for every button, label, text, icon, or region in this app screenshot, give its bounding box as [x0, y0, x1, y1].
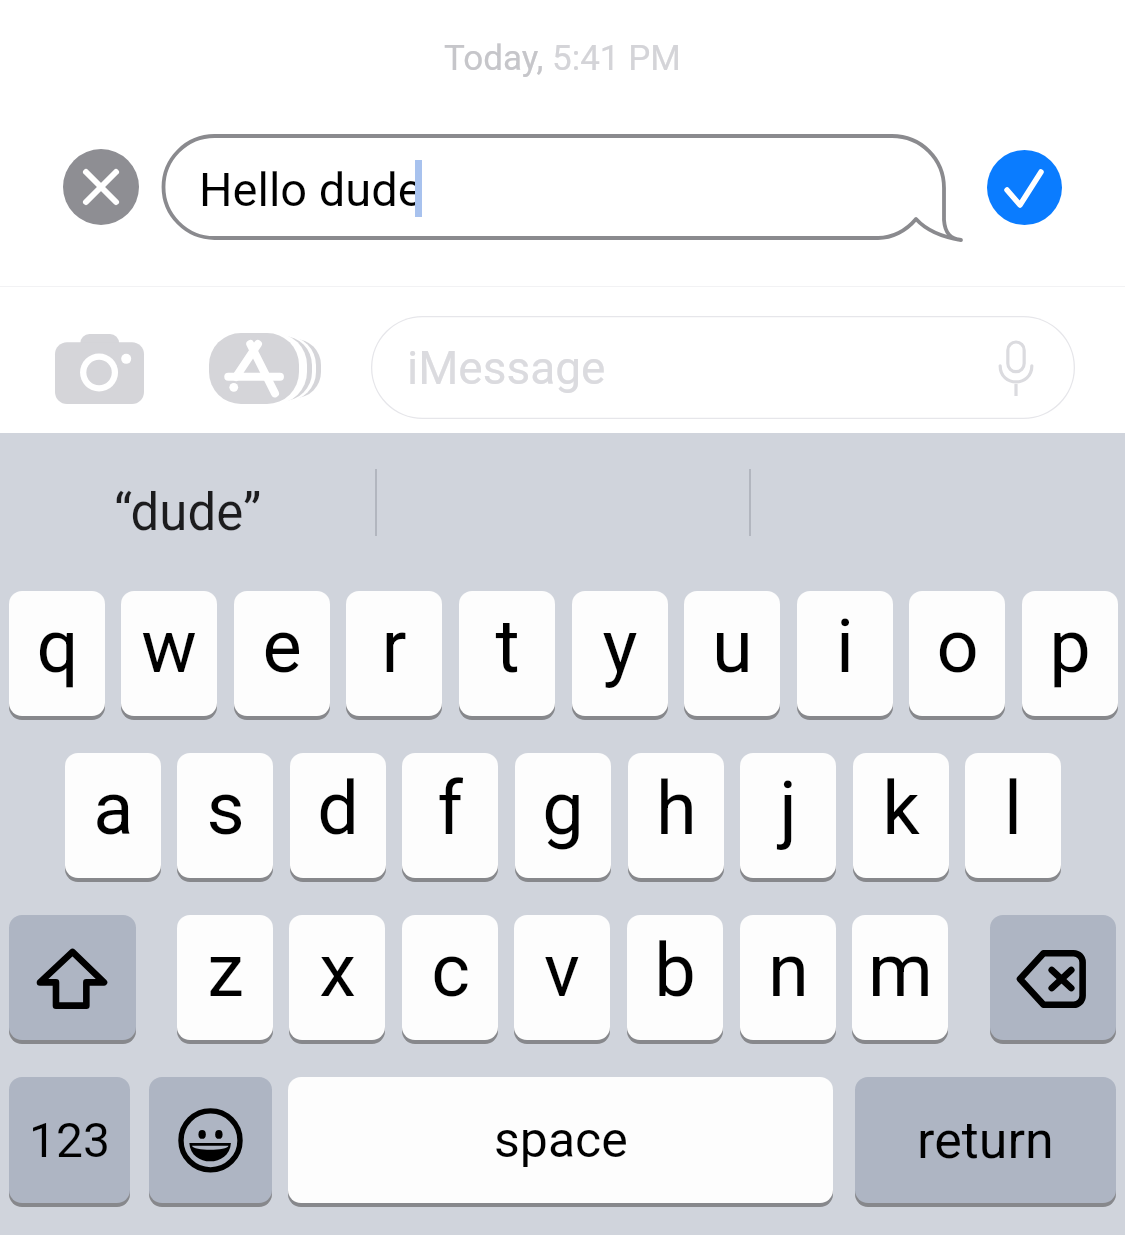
staticText: e: [262, 603, 302, 690]
button[interactable]: a: [65, 753, 161, 878]
button[interactable]: f: [402, 753, 498, 878]
button[interactable]: s: [177, 753, 273, 878]
button[interactable]: [161, 133, 966, 245]
button[interactable]: “dude”: [0, 465, 375, 560]
button[interactable]: g: [515, 753, 611, 878]
staticText: w: [141, 603, 197, 690]
staticText: l: [1004, 765, 1022, 852]
staticText: r: [381, 603, 407, 690]
staticText: v: [544, 927, 580, 1014]
button[interactable]: t: [459, 591, 555, 716]
button[interactable]: Emoji: [149, 1077, 272, 1203]
button[interactable]: Cancel: [63, 149, 139, 225]
staticText: n: [768, 927, 809, 1014]
staticText: c: [431, 927, 470, 1014]
button[interactable]: r: [346, 591, 442, 716]
staticText: Today,: [444, 38, 552, 79]
staticText: z: [207, 927, 244, 1014]
staticText: b: [654, 927, 696, 1014]
button[interactable]: n: [740, 915, 836, 1040]
button[interactable]: u: [684, 591, 780, 716]
staticText: q: [36, 603, 79, 690]
button[interactable]: m: [852, 915, 948, 1040]
staticText: i: [836, 603, 854, 690]
staticText: g: [542, 765, 584, 852]
button[interactable]: j: [740, 753, 836, 878]
button[interactable]: iMessage: [371, 316, 1075, 419]
staticText: Hello dude: [199, 162, 423, 217]
staticText: iMessage: [407, 341, 606, 395]
button[interactable]: z: [177, 915, 273, 1040]
staticText: return: [917, 1110, 1054, 1171]
button[interactable]: x: [289, 915, 385, 1040]
staticText: a: [93, 765, 134, 852]
staticText: j: [779, 765, 797, 852]
staticText: o: [936, 603, 979, 690]
button[interactable]: e: [234, 591, 330, 716]
staticText: 5:41 PM: [552, 38, 681, 79]
button[interactable]: h: [628, 753, 724, 878]
button[interactable]: Shift: [9, 915, 136, 1040]
button[interactable]: space: [288, 1077, 833, 1203]
staticText: p: [1049, 603, 1091, 690]
button[interactable]: l: [965, 753, 1061, 878]
button[interactable]: y: [572, 591, 668, 716]
button[interactable]: w: [121, 591, 217, 716]
staticText: “dude”: [114, 483, 262, 543]
button[interactable]: 123: [9, 1077, 130, 1203]
staticText: 123: [29, 1112, 110, 1168]
button[interactable]: o: [909, 591, 1005, 716]
staticText: k: [882, 765, 920, 852]
staticText: h: [656, 765, 697, 852]
button[interactable]: Backspace: [990, 915, 1116, 1040]
staticText: x: [319, 927, 356, 1014]
button[interactable]: Camera: [55, 334, 144, 404]
staticText: d: [317, 765, 359, 852]
staticText: m: [868, 927, 933, 1014]
button[interactable]: i: [797, 591, 893, 716]
staticText: f: [437, 765, 463, 852]
button[interactable]: p: [1022, 591, 1118, 716]
button[interactable]: v: [514, 915, 610, 1040]
button[interactable]: d: [290, 753, 386, 878]
button[interactable]: c: [402, 915, 498, 1040]
staticText: s: [206, 765, 245, 852]
button[interactable]: b: [627, 915, 723, 1040]
button[interactable]: Apps: [209, 333, 319, 404]
button[interactable]: return: [855, 1077, 1116, 1203]
button[interactable]: k: [853, 753, 949, 878]
button[interactable]: q: [9, 591, 105, 716]
staticText: space: [494, 1111, 628, 1170]
staticText: y: [602, 603, 638, 690]
staticText: u: [712, 603, 753, 690]
button[interactable]: Send: [987, 150, 1062, 225]
staticText: t: [495, 603, 520, 690]
